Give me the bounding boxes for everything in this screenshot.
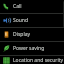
staticText: Sound bbox=[13, 17, 29, 24]
button[interactable]: Call bbox=[0, 0, 64, 13]
staticText: Power saving bbox=[13, 45, 45, 52]
staticText: Display bbox=[13, 31, 31, 38]
button[interactable]: Power saving bbox=[0, 42, 64, 55]
button[interactable]: Location and security bbox=[0, 56, 64, 64]
staticText: Call bbox=[13, 3, 22, 10]
button[interactable]: Sound bbox=[0, 14, 64, 27]
staticText: Location and security bbox=[13, 57, 64, 64]
button[interactable]: Display bbox=[0, 28, 64, 41]
